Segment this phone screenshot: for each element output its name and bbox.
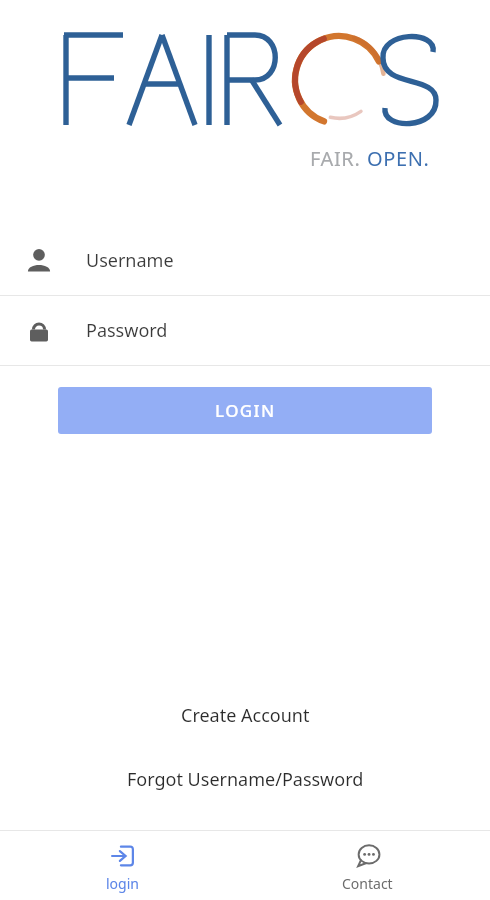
staticText: FAIR.	[310, 145, 367, 172]
button[interactable]: Username	[0, 226, 490, 295]
other: Login	[110, 843, 136, 869]
other: Username	[24, 246, 54, 276]
staticText: login	[106, 874, 139, 893]
staticText: OPEN.	[367, 145, 430, 172]
button[interactable]: Password	[0, 296, 490, 365]
other: Password	[24, 316, 54, 346]
button[interactable]: LOGIN	[58, 387, 432, 434]
staticText: Username	[86, 248, 174, 273]
button[interactable]: Forgot Username/Password	[0, 758, 490, 801]
button[interactable]: Login	[0, 831, 245, 893]
staticText: LOGIN	[215, 399, 276, 422]
button[interactable]: Create Account	[0, 694, 490, 737]
staticText: Create Account	[181, 703, 310, 728]
staticText: Contact	[342, 874, 393, 893]
other: Contact	[355, 843, 381, 869]
button[interactable]: Contact	[245, 831, 490, 893]
staticText: Password	[86, 318, 168, 343]
staticText: Forgot Username/Password	[127, 767, 364, 792]
